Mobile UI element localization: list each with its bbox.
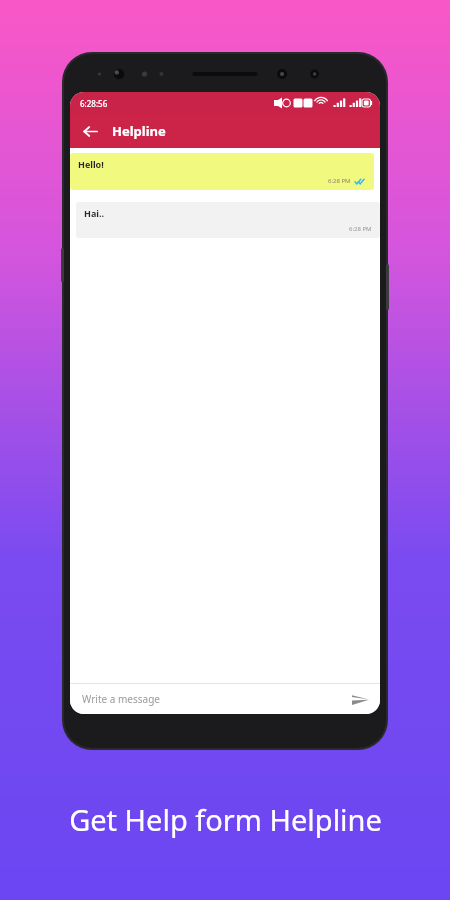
staticText: Helpline xyxy=(112,122,166,140)
button[interactable]: Send xyxy=(348,687,372,711)
staticText: 6:28 PM xyxy=(328,177,351,185)
staticText: Hello! xyxy=(78,158,104,170)
button[interactable]: Back xyxy=(76,117,104,145)
button[interactable]: Write a message xyxy=(70,684,348,714)
staticText: Get Help form Helpline xyxy=(69,800,382,839)
button[interactable]: Hello! xyxy=(70,153,374,190)
staticText: Write a message xyxy=(82,692,160,706)
staticText: 6:28:56 xyxy=(80,98,108,109)
staticText: Hai.. xyxy=(84,207,105,219)
staticText: 6:28 PM xyxy=(349,225,372,233)
button[interactable]: Hai.. xyxy=(76,202,380,238)
